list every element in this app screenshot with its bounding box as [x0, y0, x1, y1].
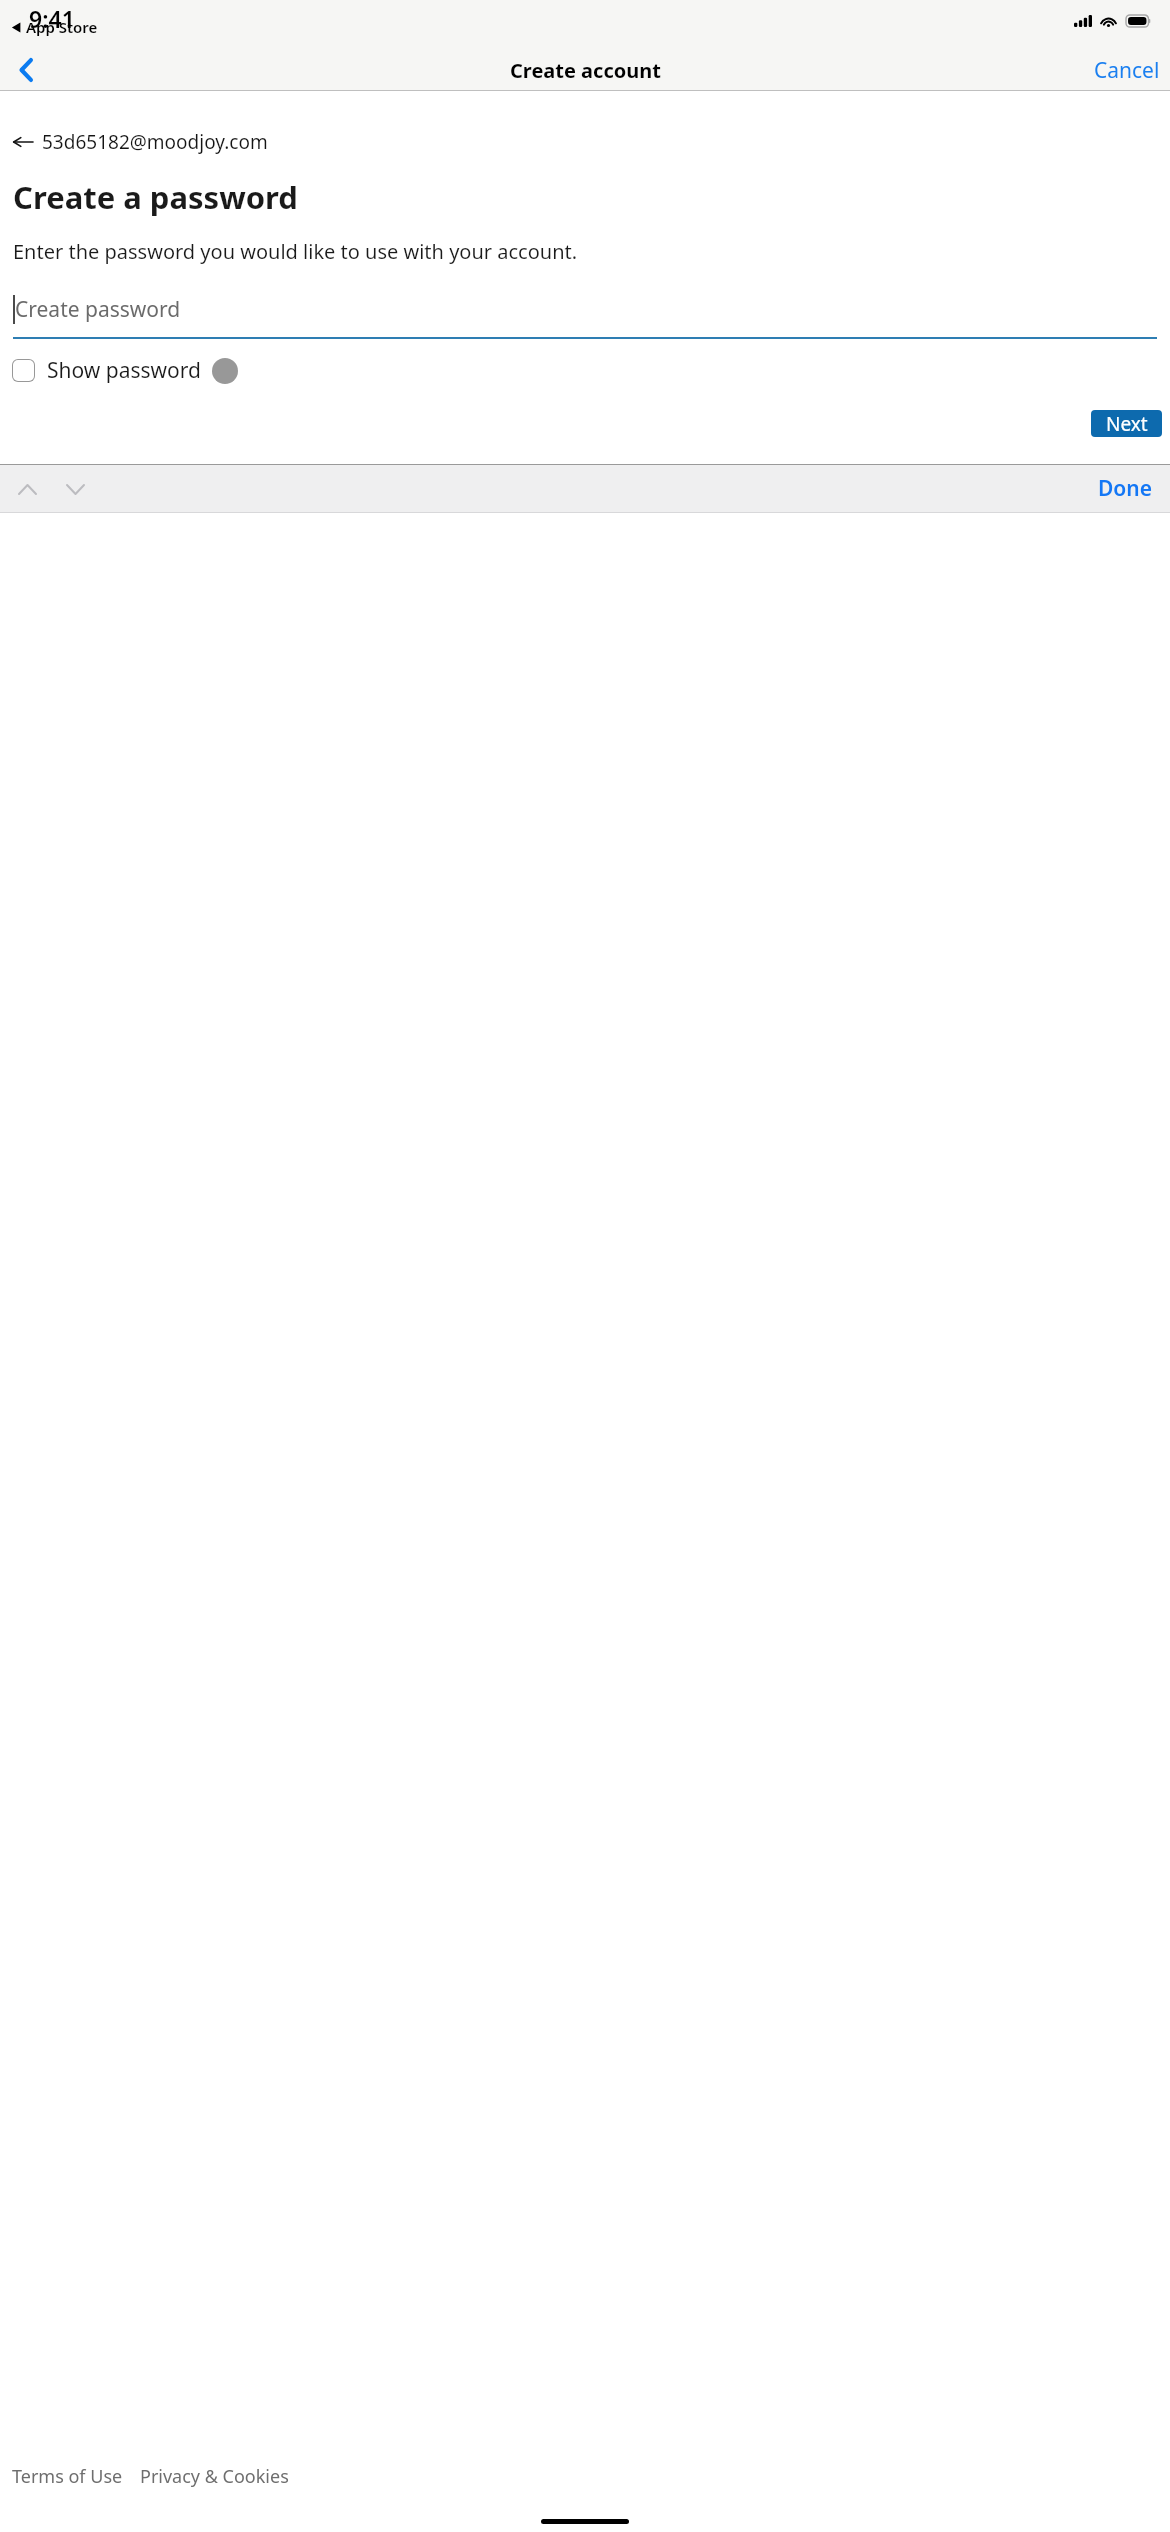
button[interactable]: App Store: [9, 16, 100, 38]
staticText: Next: [1106, 411, 1148, 437]
staticText: 9:41: [29, 3, 75, 34]
button[interactable]: Next field: [53, 467, 97, 511]
staticText: Create account: [510, 57, 661, 84]
button[interactable]: Previous field: [5, 467, 49, 511]
staticText: Done: [1098, 474, 1153, 503]
button[interactable]: Privacy & Cookies: [136, 2460, 293, 2493]
button[interactable]: 53d65182@moodjoy.com: [8, 125, 280, 159]
staticText: Create a password: [13, 176, 298, 218]
button[interactable]: Done: [1090, 468, 1161, 509]
button[interactable]: Back: [4, 50, 48, 90]
staticText: Terms of Use: [12, 2464, 123, 2489]
button[interactable]: Show password: [7, 350, 206, 391]
button[interactable]: Terms of Use: [8, 2460, 127, 2493]
button[interactable]: Cancel: [1084, 50, 1170, 90]
staticText: Create password: [15, 295, 181, 324]
button[interactable]: Next: [1091, 410, 1162, 437]
staticText: Cancel: [1094, 56, 1160, 84]
staticText: Enter the password you would like to use…: [13, 238, 578, 265]
staticText: 53d65182@moodjoy.com: [42, 129, 268, 155]
button[interactable]: Create password: [13, 295, 1157, 339]
staticText: Show password: [47, 356, 201, 385]
staticText: Privacy & Cookies: [140, 2464, 289, 2489]
staticText: App Store: [26, 17, 98, 37]
